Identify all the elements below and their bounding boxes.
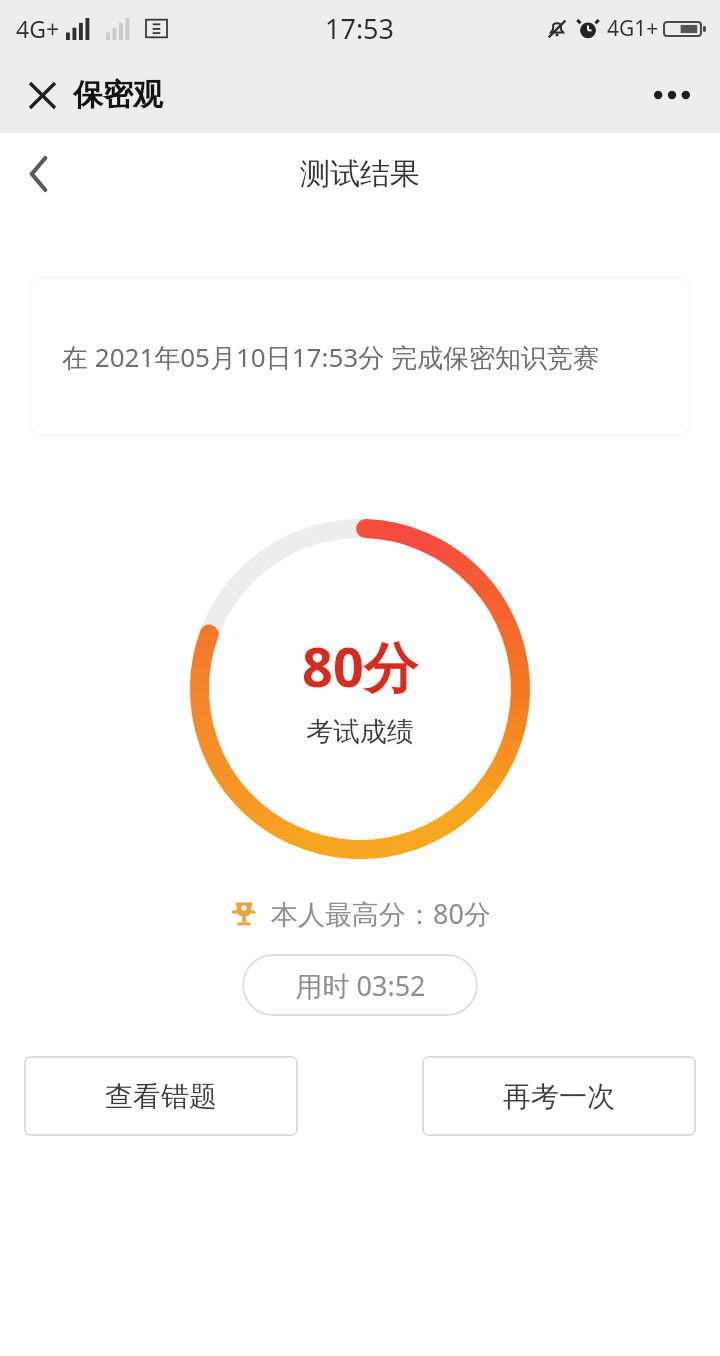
button[interactable]: Close [22, 75, 62, 115]
staticText: 测试结果 [300, 155, 420, 193]
staticText: 考试成绩 [306, 715, 414, 749]
staticText: 17:53 [325, 10, 395, 47]
staticText: 4G+ [16, 13, 60, 44]
staticText: 用时 03:52 [295, 967, 426, 1004]
button[interactable]: More options [650, 73, 694, 117]
staticText: 本人最高分：80分 [271, 895, 491, 932]
button[interactable]: 查看错题 [24, 1056, 298, 1136]
staticText: 4G1+ [607, 14, 659, 43]
staticText: 保密观 [73, 76, 163, 114]
staticText: 80分 [302, 629, 418, 703]
button[interactable]: 在 2021年05月10日17:53分 完成保密知识竞赛 [30, 277, 690, 436]
staticText: 再考一次 [503, 1079, 615, 1114]
staticText: 查看错题 [105, 1079, 217, 1114]
button[interactable]: 再考一次 [422, 1056, 696, 1136]
button[interactable]: Back [12, 147, 66, 201]
button[interactable]: 用时 03:52 [242, 954, 478, 1016]
staticText: 在 2021年05月10日17:53分 完成保密知识竞赛 [62, 339, 599, 375]
